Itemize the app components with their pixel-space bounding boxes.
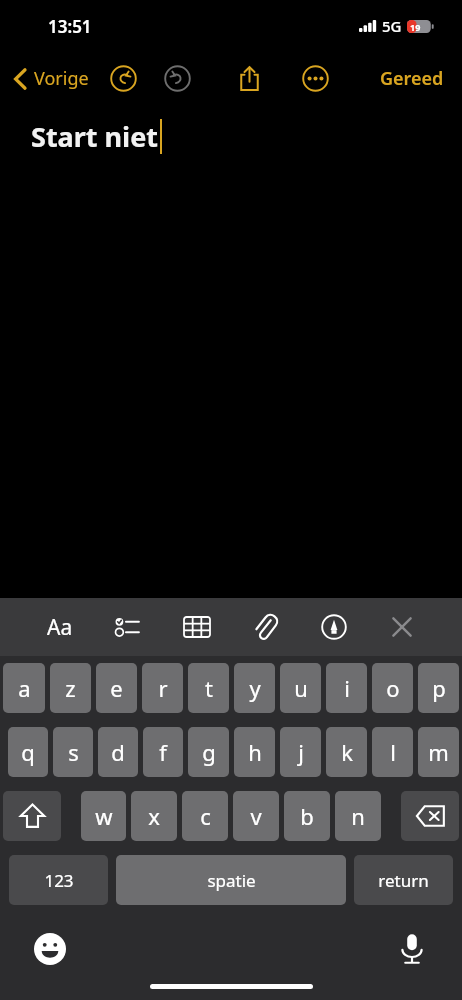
- staticText: u: [294, 673, 308, 703]
- staticText: j: [298, 737, 304, 767]
- button[interactable]: s: [53, 727, 93, 777]
- staticText: return: [378, 869, 429, 892]
- staticText: 19: [410, 21, 421, 33]
- button[interactable]: g: [188, 727, 229, 777]
- staticText: r: [158, 673, 168, 703]
- staticText: 123: [44, 869, 74, 892]
- button[interactable]: k: [326, 727, 367, 777]
- button[interactable]: f: [143, 727, 183, 777]
- button[interactable]: More options: [294, 57, 336, 99]
- staticText: y: [249, 673, 261, 703]
- staticText: Vorige: [34, 66, 89, 91]
- button[interactable]: Text format: [38, 605, 82, 649]
- button[interactable]: x: [131, 791, 177, 841]
- staticText: p: [432, 673, 446, 703]
- button[interactable]: Dictation: [390, 927, 434, 971]
- staticText: v: [250, 801, 262, 831]
- button[interactable]: m: [418, 727, 459, 777]
- staticText: x: [148, 801, 160, 831]
- button[interactable]: n: [335, 791, 381, 841]
- staticText: i: [344, 673, 350, 703]
- staticText: m: [428, 737, 449, 767]
- button[interactable]: w: [81, 791, 126, 841]
- button[interactable]: e: [96, 663, 137, 713]
- button[interactable]: i: [326, 663, 367, 713]
- button[interactable]: c: [182, 791, 228, 841]
- staticText: k: [341, 737, 353, 767]
- button[interactable]: Redo: [156, 57, 198, 99]
- button[interactable]: Table: [175, 605, 219, 649]
- staticText: s: [68, 737, 79, 767]
- button[interactable]: Undo: [102, 57, 144, 99]
- staticText: b: [300, 801, 314, 831]
- staticText: l: [390, 737, 396, 767]
- button[interactable]: Share: [228, 57, 270, 99]
- button[interactable]: Backspace: [401, 791, 459, 841]
- button[interactable]: y: [234, 663, 275, 713]
- staticText: z: [65, 673, 76, 703]
- staticText: 5G: [382, 16, 402, 36]
- button[interactable]: t: [188, 663, 229, 713]
- button[interactable]: Attach: [243, 605, 287, 649]
- staticText: t: [205, 673, 213, 703]
- staticText: w: [95, 801, 113, 831]
- staticText: f: [159, 737, 167, 767]
- staticText: Start niet: [31, 118, 159, 155]
- button[interactable]: spatie: [116, 855, 346, 905]
- staticText: n: [351, 801, 365, 831]
- button[interactable]: j: [280, 727, 321, 777]
- button[interactable]: Close keyboard: [380, 605, 424, 649]
- staticText: 13:51: [48, 15, 92, 38]
- button[interactable]: o: [372, 663, 413, 713]
- staticText: Gereed: [380, 66, 444, 91]
- button[interactable]: z: [50, 663, 91, 713]
- button[interactable]: l: [372, 727, 413, 777]
- staticText: c: [200, 801, 211, 831]
- button[interactable]: d: [98, 727, 138, 777]
- button[interactable]: 123: [9, 855, 108, 905]
- button[interactable]: v: [233, 791, 279, 841]
- staticText: spatie: [207, 869, 256, 892]
- button[interactable]: Markup: [312, 605, 356, 649]
- button[interactable]: return: [354, 855, 453, 905]
- button[interactable]: a: [3, 663, 45, 713]
- staticText: q: [21, 737, 35, 767]
- button[interactable]: Checklist: [106, 605, 150, 649]
- staticText: h: [248, 737, 262, 767]
- button[interactable]: r: [142, 663, 183, 713]
- button[interactable]: u: [280, 663, 321, 713]
- button[interactable]: Shift: [3, 791, 61, 841]
- button[interactable]: b: [284, 791, 330, 841]
- button[interactable]: h: [234, 727, 275, 777]
- button[interactable]: Vorige: [8, 60, 95, 97]
- button[interactable]: p: [418, 663, 459, 713]
- staticText: a: [18, 673, 31, 703]
- staticText: e: [110, 673, 123, 703]
- staticText: g: [202, 737, 216, 767]
- button[interactable]: q: [8, 727, 48, 777]
- staticText: o: [386, 673, 400, 703]
- staticText: d: [111, 737, 125, 767]
- staticText: Aa: [47, 613, 73, 642]
- button[interactable]: Emoji: [28, 927, 72, 971]
- button[interactable]: Gereed: [372, 60, 452, 97]
